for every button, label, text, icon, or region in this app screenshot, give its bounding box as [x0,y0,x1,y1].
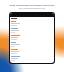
button[interactable] [10,56,54,63]
staticText: Keep everything you need in one place [5,3,59,6]
staticText: Fast, private and always in sync [5,7,59,9]
button[interactable] [10,21,54,28]
button[interactable] [10,28,54,35]
button[interactable] [10,49,54,56]
button[interactable] [10,35,54,42]
button[interactable] [10,42,54,49]
